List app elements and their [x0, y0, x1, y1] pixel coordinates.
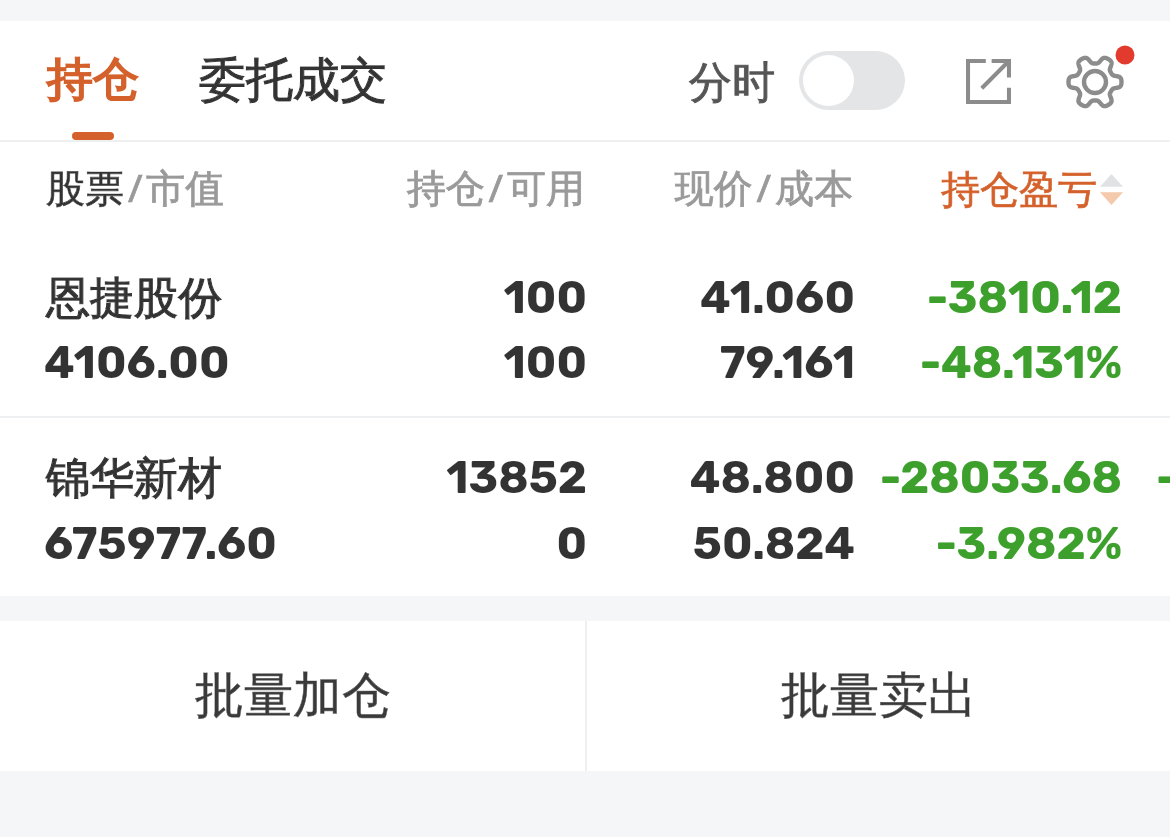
staticText: 持仓 / 可用	[406, 160, 585, 213]
staticText: 批量加仓	[195, 665, 391, 727]
staticText: 分时	[689, 56, 775, 110]
button[interactable]: Intraday chart toggle, off	[799, 51, 905, 110]
button[interactable]: 持仓 / 可用	[285, 160, 585, 213]
staticText: 批量加仓	[195, 665, 391, 727]
button[interactable]: 持仓	[0, 21, 167, 140]
staticText: 批量卖出	[781, 665, 977, 727]
staticText: 恩捷股份	[46, 271, 222, 326]
button[interactable]: 委托成交	[167, 21, 403, 140]
button[interactable]: Open in new window	[954, 41, 1022, 121]
button[interactable]: 批量卖出	[587, 621, 1170, 771]
button[interactable]: 股票 / 市值	[46, 160, 225, 213]
staticText: -3810.12	[926, 271, 1122, 324]
staticText: 批量卖出	[781, 665, 977, 727]
button[interactable]: 批量加仓	[0, 621, 585, 771]
staticText: 79.161	[719, 336, 855, 389]
staticText: 现价 / 成本	[674, 160, 853, 213]
staticText: 41.060	[700, 271, 855, 324]
staticText: 100	[503, 271, 587, 324]
button[interactable]: 恩捷股份	[0, 225, 1170, 416]
staticText: 675977.60	[44, 517, 277, 570]
button[interactable]: 锦华新材	[0, 418, 1170, 596]
staticText: 持仓 / 可用	[406, 160, 585, 213]
staticText: 股票 / 市值	[46, 160, 225, 213]
staticText: 股票 / 市值	[46, 160, 225, 213]
staticText: -48.131%	[919, 336, 1122, 389]
staticText: 100	[503, 336, 587, 389]
staticText: 分时	[689, 56, 775, 110]
staticText: 委托成交	[199, 51, 387, 110]
staticText: 持仓	[46, 52, 138, 110]
staticText: 现价 / 成本	[674, 160, 853, 213]
staticText: 持仓盈亏	[941, 165, 1097, 214]
button[interactable]: 现价 / 成本	[553, 160, 853, 213]
staticText: -3.982%	[935, 517, 1122, 570]
staticText: 锦华新材	[46, 451, 222, 506]
staticText: -28033.68	[879, 451, 1122, 504]
staticText: 48.800	[689, 451, 855, 504]
staticText: 锦华新材	[46, 451, 222, 506]
staticText: 4106.00	[44, 336, 230, 389]
staticText: 0	[556, 517, 587, 570]
staticText: -0	[1156, 451, 1170, 504]
staticText: 50.824	[692, 517, 855, 570]
staticText: 13852	[446, 451, 587, 504]
button[interactable]: 持仓盈亏	[941, 155, 1126, 215]
button[interactable]: Settings	[1051, 41, 1139, 121]
staticText: 委托成交	[199, 51, 387, 110]
staticText: 恩捷股份	[46, 271, 222, 326]
staticText: 持仓盈亏	[941, 165, 1097, 214]
